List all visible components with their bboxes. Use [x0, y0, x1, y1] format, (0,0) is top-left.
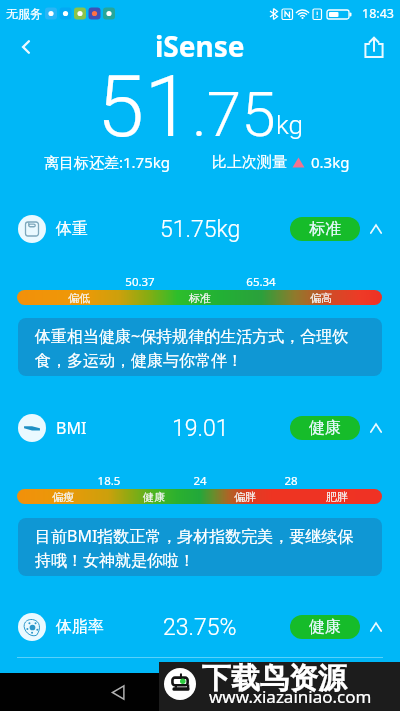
staticText: 28	[266, 473, 316, 489]
staticText: BMI	[56, 417, 87, 439]
staticText: 下载鸟资源	[202, 660, 347, 697]
staticText: 无服务	[6, 6, 42, 21]
staticText: iSense	[155, 27, 245, 65]
staticText: 19.01	[172, 415, 229, 442]
staticText: kg	[276, 110, 303, 140]
staticText: 18.5	[84, 473, 134, 489]
staticText: 标准	[309, 219, 341, 239]
staticText: 偏瘦	[38, 490, 88, 504]
staticText: 体脂率	[56, 617, 104, 637]
staticText: 51	[97, 57, 192, 157]
staticText: 健康	[309, 617, 341, 637]
staticText: 体重相当健康~保持规律的生活方式，合理饮食，多运动，健康与你常伴！	[35, 325, 355, 371]
staticText: 51.75kg	[160, 216, 241, 243]
staticText: 偏高	[296, 291, 346, 305]
button[interactable]: BMI	[0, 408, 400, 448]
staticText: 0.3kg	[311, 152, 350, 172]
staticText: 偏低	[54, 291, 104, 305]
staticText: 18:43	[362, 5, 394, 22]
staticText: 65.34	[236, 274, 286, 290]
button[interactable]: 体重	[0, 209, 400, 249]
button[interactable]: Back	[8, 29, 44, 65]
staticText: 健康	[309, 418, 341, 438]
staticText: 健康	[129, 490, 179, 504]
button[interactable]: Share	[356, 29, 392, 65]
button[interactable]: Back	[101, 675, 135, 709]
staticText: 偏胖	[220, 490, 270, 504]
staticText: 肥胖	[312, 490, 362, 504]
staticText: 比上次测量	[212, 153, 287, 172]
staticText: 23.75%	[163, 614, 237, 641]
staticText: .75	[192, 78, 276, 151]
staticText: 目前BMI指数正常，身材指数完美，要继续保持哦！女神就是你啦！	[35, 525, 355, 571]
staticText: 24	[175, 473, 225, 489]
staticText: 离目标还差:1.75kg	[44, 152, 171, 172]
staticText: 50.37	[115, 274, 165, 290]
staticText: 体重	[56, 219, 88, 239]
button[interactable]: 体脂率	[0, 607, 400, 647]
staticText: www.xiazainiao.com	[209, 685, 372, 708]
staticText: 标准	[175, 291, 225, 305]
